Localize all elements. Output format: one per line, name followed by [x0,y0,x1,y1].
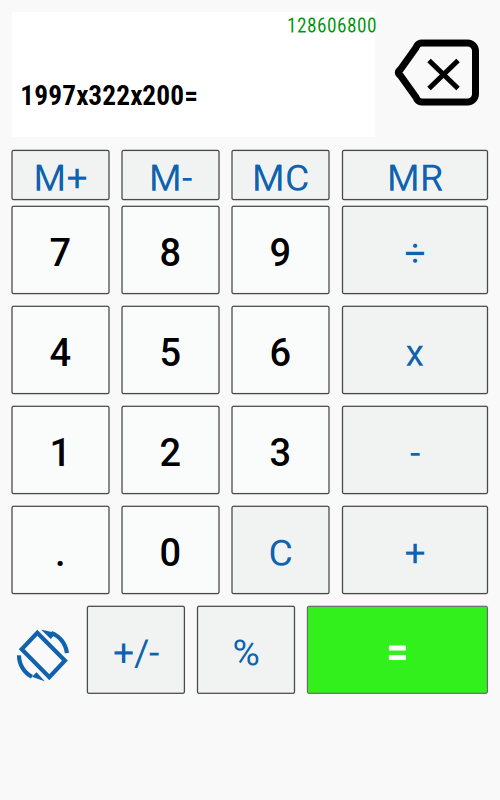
button[interactable]: 0 [122,506,219,594]
staticText: 5 [159,331,181,375]
staticText: MR [387,156,443,200]
button[interactable]: M- [122,150,219,200]
button[interactable]: MR [342,150,487,200]
staticText: % [232,631,259,675]
staticText: ÷ [404,231,425,275]
staticText: M+ [33,156,87,200]
staticText: x [405,331,424,375]
button[interactable]: . [12,506,109,594]
button[interactable]: ÷ [342,206,487,294]
staticText: 128606800 [287,15,377,37]
staticText: 1997x322x200= [20,80,198,112]
button[interactable]: +/- [87,606,184,693]
staticText: 4 [49,331,71,375]
button[interactable]: 8 [122,206,219,294]
staticText: 9 [269,231,291,275]
button[interactable]: 1 [12,406,109,494]
staticText: . [55,531,66,575]
button[interactable]: 7 [12,206,109,294]
staticText: MC [252,156,309,200]
staticText: 2 [159,431,181,475]
staticText: 0 [159,531,181,575]
staticText: 1 [49,431,71,475]
button[interactable]: + [342,506,487,594]
button[interactable]: M+ [12,150,109,200]
staticText: M- [149,156,192,200]
button[interactable]: 2 [122,406,219,494]
staticText: 3 [269,431,291,475]
button[interactable]: 6 [232,306,329,394]
button[interactable]: % [197,606,294,693]
button[interactable]: Rotate screen [17,630,67,681]
staticText: +/- [113,631,159,675]
staticText: + [404,531,425,575]
staticText: C [268,531,292,575]
button[interactable]: MC [232,150,329,200]
button[interactable]: 4 [12,306,109,394]
button[interactable]: C [232,506,329,594]
staticText: 8 [159,231,181,275]
staticText: 7 [49,231,71,275]
button[interactable]: x [342,306,487,394]
button[interactable]: - [342,406,487,494]
button[interactable]: Delete [393,39,479,105]
button[interactable]: 9 [232,206,329,294]
staticText: - [410,431,420,475]
staticText: 6 [269,331,291,375]
button[interactable]: Equals [307,606,487,693]
button[interactable]: 5 [122,306,219,394]
button[interactable]: 3 [232,406,329,494]
